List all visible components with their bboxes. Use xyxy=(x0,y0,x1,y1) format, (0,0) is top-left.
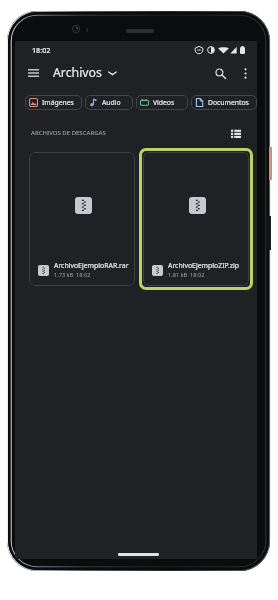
button[interactable]: Vídeos xyxy=(136,95,188,110)
staticText: 1,81 kB 18:02 xyxy=(168,271,205,279)
button[interactable]: List view xyxy=(229,126,243,140)
staticText: Audio xyxy=(102,98,121,107)
button[interactable]: ArchivoEjemploZIP.zip xyxy=(143,152,249,286)
button[interactable]: More options xyxy=(237,65,253,81)
staticText: Vídeos xyxy=(153,98,175,107)
button[interactable]: Search xyxy=(209,62,231,84)
button[interactable]: Audio xyxy=(85,95,133,110)
button[interactable]: Archivos xyxy=(53,64,117,81)
staticText: ArchivoEjemploRAR.rar xyxy=(54,261,129,270)
button[interactable]: Menu xyxy=(22,62,44,84)
staticText: 18:02 xyxy=(32,45,51,55)
staticText: Archivos xyxy=(53,64,102,81)
staticText: Imágenes xyxy=(42,98,74,107)
button[interactable]: Documentos xyxy=(191,95,257,110)
staticText: 1,73 kB 18:02 xyxy=(54,271,91,279)
button[interactable]: Imágenes xyxy=(25,95,82,110)
staticText: Documentos xyxy=(208,98,249,107)
button[interactable]: ArchivoEjemploRAR.rar xyxy=(29,152,135,286)
staticText: ARCHIVOS DE DESCARGAS xyxy=(31,129,106,137)
staticText: ArchivoEjemploZIP.zip xyxy=(168,261,239,270)
